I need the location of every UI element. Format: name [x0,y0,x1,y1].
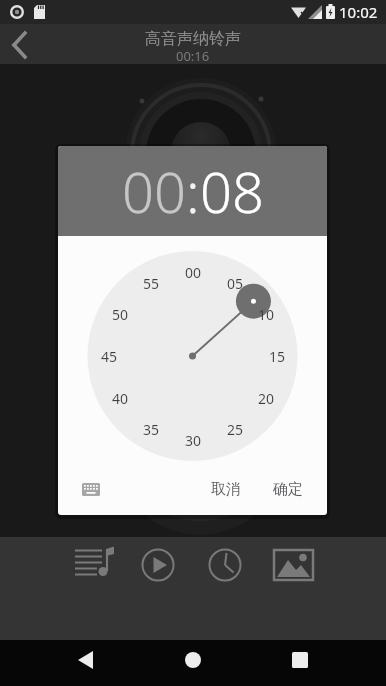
staticText: 15 [269,347,286,366]
button[interactable] [208,548,242,582]
staticText: 40 [112,389,129,408]
staticText: : [186,153,200,229]
staticText: 45 [101,347,118,366]
staticText: 00 [185,263,202,282]
staticText: 30 [185,431,202,450]
button[interactable] [285,645,315,675]
staticText: 高音声纳铃声 [145,29,241,49]
staticText: 00 [122,153,186,229]
staticText: 35 [143,420,160,439]
staticText: 20 [258,389,275,408]
staticText: 取消 [211,480,241,499]
button[interactable] [64,545,120,589]
staticText: 05 [227,274,244,293]
staticText: 10 [258,305,275,324]
button[interactable]: 取消 [201,472,251,506]
staticText: 08 [200,153,264,229]
staticText: 确定 [273,480,303,499]
staticText: 50 [112,305,129,324]
button[interactable] [74,474,108,504]
staticText: 25 [227,420,244,439]
button[interactable] [0,24,40,64]
staticText: 00:16 [176,47,210,63]
button[interactable] [70,645,100,675]
button[interactable] [178,645,208,675]
staticText: 10:02 [339,2,378,22]
button[interactable] [272,548,316,582]
button[interactable]: 确定 [263,472,313,506]
button[interactable] [141,548,175,582]
staticText: 55 [143,274,160,293]
